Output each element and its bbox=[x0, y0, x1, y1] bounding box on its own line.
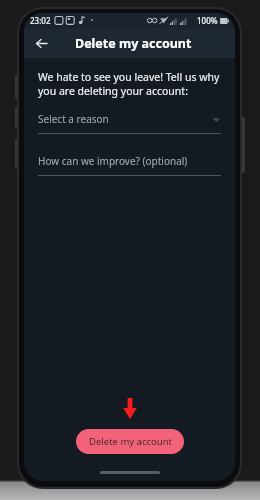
button[interactable]: How can we improve? (optional) bbox=[38, 154, 221, 176]
button[interactable]: Back bbox=[30, 32, 52, 54]
staticText: How can we improve? (optional) bbox=[38, 154, 188, 168]
button[interactable]: Select a reason bbox=[38, 112, 221, 134]
staticText: Delete my account bbox=[75, 35, 192, 52]
staticText: Delete my account bbox=[89, 435, 172, 448]
staticText: We hate to see you leave! Tell us why yo… bbox=[38, 70, 221, 98]
button[interactable]: Delete my account bbox=[76, 429, 184, 454]
staticText: Select a reason bbox=[38, 112, 212, 126]
staticText: 100% bbox=[197, 15, 218, 26]
staticText: 23:02 bbox=[30, 15, 51, 26]
